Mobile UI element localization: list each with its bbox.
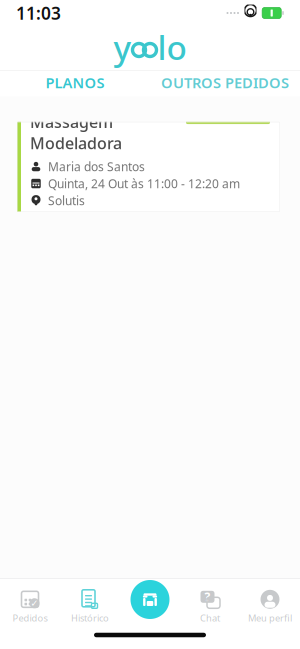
staticText: Chat: [200, 612, 220, 624]
staticText: y: [113, 25, 131, 69]
staticText: Histórico: [71, 612, 109, 624]
button[interactable]: Home: [130, 580, 169, 619]
button[interactable]: Histórico: [60, 586, 120, 626]
staticText: OUTROS PEDIDOS: [161, 73, 289, 92]
staticText: lo: [157, 25, 186, 69]
button[interactable]: PLANOS: [0, 71, 150, 97]
staticText: ✓: [30, 598, 38, 609]
button[interactable]: Massagem Modeladora: [17, 122, 280, 212]
staticText: Solutis: [48, 193, 85, 208]
button[interactable]: OUTROS PEDIDOS: [150, 71, 300, 97]
staticText: Pedidos: [12, 612, 47, 624]
staticText: 11:03: [16, 1, 61, 24]
staticText: Quinta, 24 Out às 11:00 - 12:20 am: [48, 176, 240, 191]
staticText: Meu perfil: [248, 612, 292, 624]
button[interactable]: ?: [180, 586, 240, 626]
staticText: Realizado: [206, 110, 249, 123]
staticText: ?: [204, 589, 210, 605]
staticText: PLANOS: [45, 73, 104, 92]
staticText: Massagem Modeladora: [30, 111, 122, 154]
staticText: Maria dos Santos: [48, 159, 145, 174]
button[interactable]: ✓: [0, 586, 60, 626]
button[interactable]: Meu perfil: [240, 586, 300, 626]
